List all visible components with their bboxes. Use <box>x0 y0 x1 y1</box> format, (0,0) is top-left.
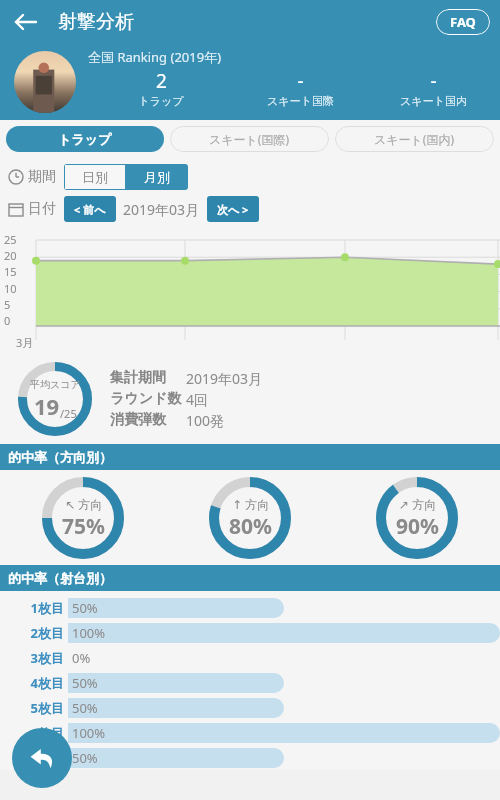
staticText: 50% <box>72 674 98 692</box>
staticText: 的中率（射台別） <box>8 570 112 586</box>
staticText: スキート(国際) <box>209 131 290 147</box>
staticText: 日別 <box>82 169 108 185</box>
button[interactable]: Back <box>12 728 72 788</box>
staticText: 1枚目 <box>0 599 64 617</box>
staticText: 100% <box>72 724 106 742</box>
staticText: 4回 <box>186 390 209 409</box>
staticText: スキート(国内) <box>374 131 455 147</box>
staticText: スキート国際 <box>267 94 334 108</box>
staticText: 的中率（方向別） <box>8 449 112 465</box>
button[interactable]: Back <box>8 4 44 40</box>
staticText: 日付 <box>28 200 56 218</box>
button[interactable]: 3枚目 <box>0 645 500 670</box>
staticText: 期間 <box>28 168 56 186</box>
button[interactable]: スキート(国際) <box>170 126 329 152</box>
button[interactable]: トラップ <box>6 126 164 152</box>
staticText: 3枚目 <box>0 649 64 667</box>
staticText: - <box>430 68 437 94</box>
button[interactable]: < 前へ <box>64 196 116 222</box>
staticText: FAQ <box>450 13 476 31</box>
button[interactable]: 月別 <box>126 164 188 190</box>
button[interactable]: 7枚目 <box>0 745 500 770</box>
staticText: 平均スコア <box>30 378 81 391</box>
staticText: 50% <box>72 749 98 767</box>
button[interactable]: 次へ > <box>207 196 259 222</box>
button[interactable]: 2枚目 <box>0 620 500 645</box>
staticText: 50% <box>72 599 98 617</box>
staticText: 5 <box>4 297 11 312</box>
staticText: - <box>297 68 304 94</box>
button[interactable]: FAQ <box>436 9 490 35</box>
button[interactable]: Profile photo <box>14 51 76 113</box>
staticText: トラップ <box>138 94 184 108</box>
staticText: ラウンド数 <box>110 390 186 408</box>
staticText: 射撃分析 <box>58 10 134 34</box>
staticText: トラップ <box>58 131 112 147</box>
staticText: /25 <box>60 406 77 421</box>
staticText: 90% <box>396 512 439 541</box>
staticText: < 前へ <box>74 202 106 217</box>
staticText: 2 <box>156 68 167 94</box>
staticText: 2019年03月 <box>186 369 263 388</box>
staticText: 100発 <box>186 411 225 430</box>
staticText: ↗ 方向 <box>399 496 437 512</box>
staticText: 0 <box>4 313 11 328</box>
staticText: スキート国内 <box>400 94 467 108</box>
staticText: 15 <box>4 264 17 279</box>
staticText: 50% <box>72 699 98 717</box>
button[interactable]: 日別 <box>64 164 126 190</box>
staticText: 消費弾数 <box>110 411 186 429</box>
staticText: 75% <box>62 512 105 541</box>
staticText: ↖ 方向 <box>65 496 103 512</box>
staticText: 80% <box>229 512 272 541</box>
staticText: 6枚目 <box>0 724 64 742</box>
button[interactable]: スキート(国内) <box>335 126 494 152</box>
staticText: ↑ 方向 <box>232 496 270 512</box>
staticText: 2019年03月 <box>123 200 200 219</box>
staticText: 100% <box>72 624 106 642</box>
staticText: 4枚目 <box>0 674 64 692</box>
button[interactable]: 6枚目 <box>0 720 500 745</box>
staticText: 全国 Ranking (2019年) <box>88 48 222 66</box>
staticText: 25 <box>4 232 17 247</box>
staticText: 19 <box>34 391 60 421</box>
button[interactable]: 4枚目 <box>0 670 500 695</box>
staticText: 集計期間 <box>110 369 186 387</box>
staticText: 3月 <box>16 335 34 350</box>
staticText: 月別 <box>144 169 170 185</box>
staticText: 0% <box>72 649 91 667</box>
staticText: 2枚目 <box>0 624 64 642</box>
staticText: 7枚目 <box>0 749 64 767</box>
staticText: 5枚目 <box>0 699 64 717</box>
staticText: 20 <box>4 248 17 263</box>
staticText: 10 <box>4 281 17 296</box>
staticText: 次へ > <box>217 202 249 217</box>
button[interactable]: 5枚目 <box>0 695 500 720</box>
button[interactable]: 1枚目 <box>0 595 500 620</box>
